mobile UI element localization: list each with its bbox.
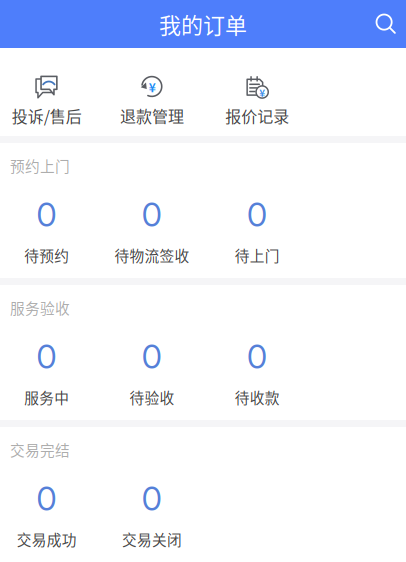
button[interactable]: Search <box>366 4 406 44</box>
button[interactable]: ¥ <box>99 75 205 129</box>
button[interactable]: 0 <box>99 344 205 403</box>
staticText: 待上门 <box>235 244 280 266</box>
button[interactable]: 0 <box>99 202 205 261</box>
staticText: 0 <box>141 336 162 376</box>
button[interactable]: 0 <box>205 202 310 261</box>
staticText: 投诉/售后 <box>12 104 82 127</box>
staticText: 退款管理 <box>120 104 184 127</box>
button[interactable]: 0 <box>205 344 310 403</box>
staticText: 0 <box>36 336 57 376</box>
staticText: 交易关闭 <box>122 528 182 550</box>
staticText: 0 <box>247 336 268 376</box>
staticText: ¥ <box>259 85 265 100</box>
button[interactable]: ¥ <box>205 75 310 129</box>
staticText: 我的订单 <box>159 8 247 40</box>
staticText: 0 <box>247 194 268 234</box>
staticText: ¥ <box>149 78 156 96</box>
staticText: 0 <box>141 478 162 518</box>
staticText: 0 <box>141 194 162 234</box>
staticText: 待收款 <box>235 386 280 408</box>
staticText: 交易成功 <box>17 528 77 550</box>
button[interactable]: 0 <box>0 486 99 545</box>
staticText: 交易完结 <box>10 439 70 460</box>
button[interactable]: 0 <box>0 202 99 261</box>
staticText: 服务中 <box>24 386 69 408</box>
staticText: 预约上门 <box>10 155 70 176</box>
staticText: 服务验收 <box>10 297 70 318</box>
staticText: 待物流签收 <box>114 244 189 266</box>
staticText: 待预约 <box>24 244 69 266</box>
button[interactable]: 0 <box>0 344 99 403</box>
staticText: 待验收 <box>129 386 174 408</box>
button[interactable]: 投诉/售后 <box>0 75 99 129</box>
staticText: 0 <box>36 478 57 518</box>
staticText: 报价记录 <box>225 104 289 127</box>
button[interactable]: 0 <box>99 486 205 545</box>
staticText: 0 <box>36 194 57 234</box>
